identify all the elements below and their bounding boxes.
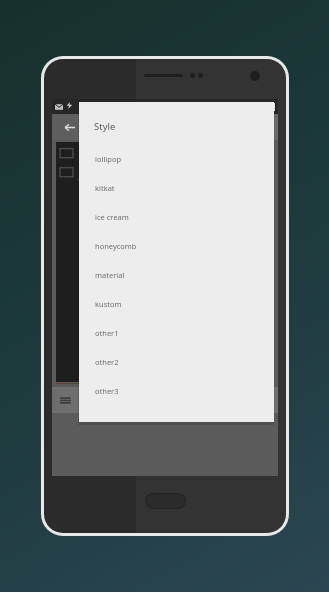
button[interactable]: lollipop — [79, 144, 274, 173]
staticText: other3 — [95, 386, 119, 396]
staticText: kitkat — [95, 183, 115, 193]
button[interactable]: ice cream — [79, 202, 274, 231]
staticText: Google Search Field — [77, 168, 84, 215]
staticText: kustom — [95, 299, 122, 309]
staticText: ice cream — [95, 212, 129, 222]
staticText: honeycomb — [95, 241, 137, 251]
staticText: other2 — [95, 357, 119, 367]
button[interactable]: other1 — [79, 318, 274, 347]
button[interactable]: material — [79, 260, 274, 289]
staticText: material — [95, 270, 125, 280]
staticText: 10:48 — [186, 101, 207, 112]
button[interactable]: other2 — [79, 347, 274, 376]
button[interactable]: other3 — [79, 376, 274, 405]
button[interactable]: honeycomb — [79, 231, 274, 260]
staticText: lollipop — [95, 154, 122, 164]
button[interactable]: Back — [60, 118, 78, 136]
button[interactable]: kitkat — [79, 173, 274, 202]
button[interactable]: kustom — [79, 289, 274, 318]
button[interactable]: Menu — [56, 391, 74, 409]
staticText: Kustom — [82, 117, 122, 132]
staticText: other1 — [95, 328, 119, 338]
staticText: Style — [94, 120, 116, 133]
